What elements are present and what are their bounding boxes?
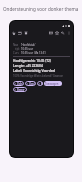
button[interactable]: More options [66, 29, 72, 36]
button[interactable]: Back [11, 29, 17, 36]
button[interactable]: Delete [23, 29, 29, 36]
button[interactable]: Meer [37, 81, 43, 86]
staticText: 100% Voordelige Wat is bekend? Gewoon Do… [13, 74, 70, 78]
staticText: Opslaan [29, 82, 35, 86]
staticText: tijd: [15, 47, 20, 51]
staticText: Ondersteuning voor donker thema [3, 6, 79, 12]
button[interactable]: Delen [13, 81, 24, 86]
button[interactable]: Mark unread [48, 29, 54, 36]
staticText: Cursus: [13, 51, 20, 55]
staticText: Hoofdgerecht: 10:35 (T2) [13, 59, 51, 63]
staticText: Lengte: +45 223684 [13, 64, 43, 68]
staticText: Bewerken [17, 88, 26, 92]
staticText: 10:35 uur [21, 47, 33, 51]
button[interactable]: Reply [60, 29, 66, 36]
staticText: Toevoegen [45, 82, 59, 86]
staticText: 'Hoofdstuk' [21, 43, 36, 47]
staticText: Naam: [13, 43, 20, 47]
button[interactable]: Bewerken [13, 87, 27, 92]
staticText: Delen [17, 82, 23, 86]
staticText: 10:35 uur Ma 13:31 [21, 51, 46, 55]
button[interactable]: Opslaan [25, 81, 36, 86]
button[interactable]: Archive [17, 29, 23, 36]
staticText: Label: Voorzichtig Voordeel [13, 69, 56, 73]
button[interactable]: Star [54, 29, 60, 36]
button[interactable]: Toevoegen [44, 81, 62, 86]
staticText: Meer [41, 82, 42, 86]
